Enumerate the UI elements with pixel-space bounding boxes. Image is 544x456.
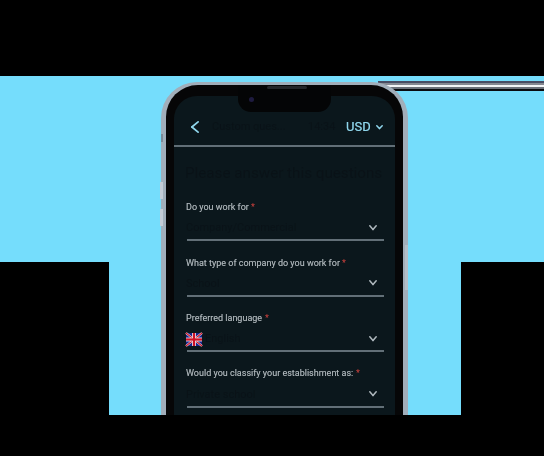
staticText: *: [356, 368, 360, 379]
button[interactable]: Back: [185, 117, 205, 137]
staticText: Preferred language: [186, 313, 263, 324]
staticText: Do you work for: [186, 202, 249, 213]
button[interactable]: [187, 364, 384, 410]
staticText: *: [265, 313, 269, 324]
staticText: *: [342, 258, 346, 269]
button[interactable]: [187, 309, 384, 355]
staticText: *: [251, 202, 255, 213]
staticText: What type of company do you work for: [186, 258, 340, 269]
button[interactable]: USD: [346, 119, 383, 134]
staticText: Would you classify your establishment as…: [186, 368, 354, 379]
staticText: USD: [346, 119, 371, 134]
button[interactable]: [187, 198, 384, 244]
button[interactable]: [187, 254, 384, 300]
